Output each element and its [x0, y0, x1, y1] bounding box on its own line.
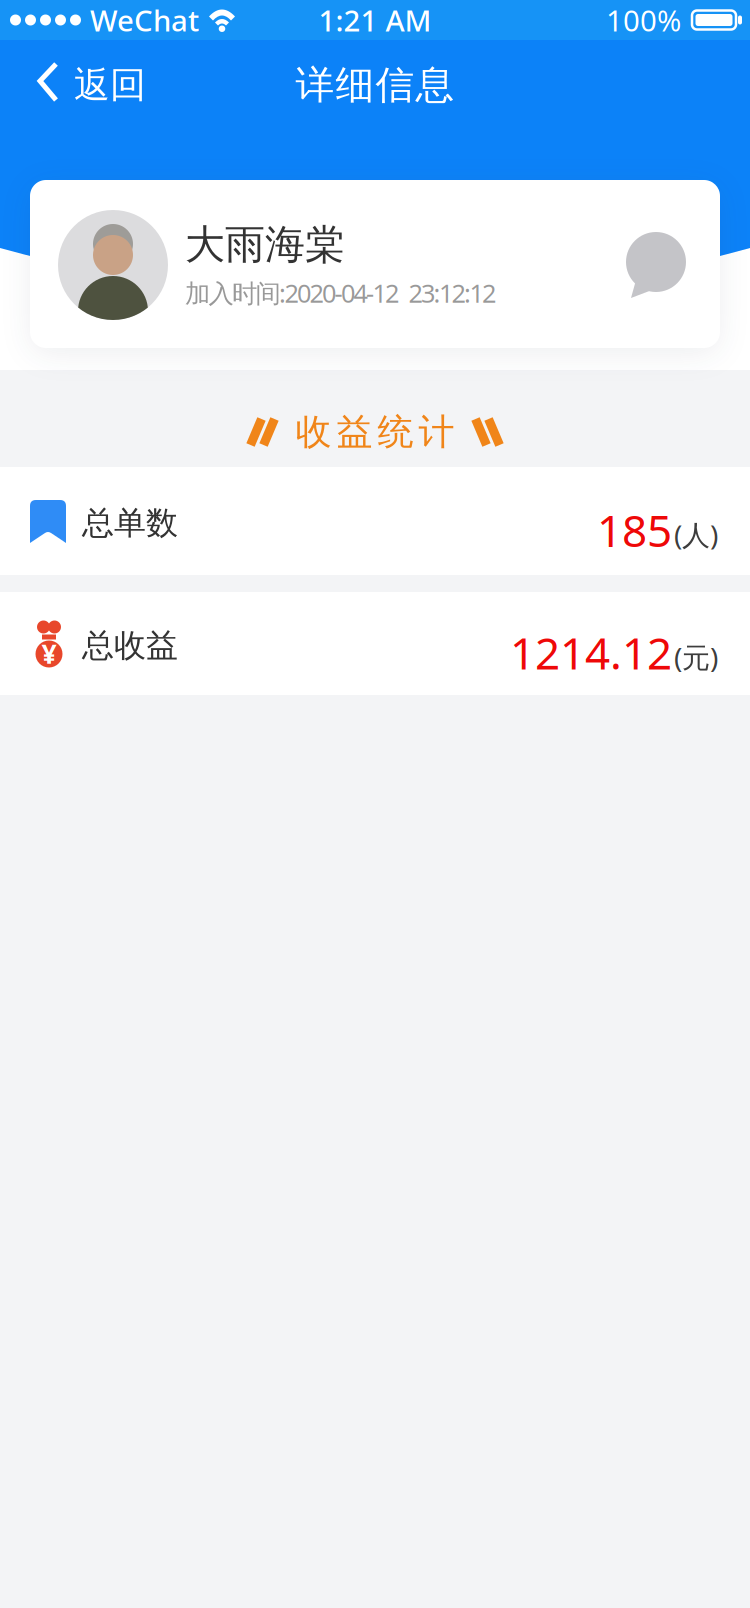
staticText: 统	[377, 410, 413, 454]
staticText: 大雨海棠	[185, 220, 345, 269]
staticText: 加入时间:2020-04-12 23:12:12	[185, 276, 496, 310]
staticText: (元)	[674, 638, 718, 676]
staticText: 益	[336, 410, 372, 454]
staticText: 1:21 AM	[318, 0, 431, 39]
staticText: 收	[295, 410, 331, 454]
staticText: 1214.12	[510, 623, 672, 682]
staticText: 计	[418, 410, 454, 454]
staticText: (人)	[674, 516, 718, 553]
staticText: 详细信息	[295, 61, 454, 109]
staticText: ¥	[41, 636, 56, 671]
staticText: WeChat	[90, 0, 199, 39]
button[interactable]	[626, 232, 690, 300]
staticText: 185	[597, 501, 672, 559]
staticText: 总单数	[82, 503, 178, 543]
staticText: 100%	[606, 0, 681, 39]
staticText: 返回	[74, 63, 146, 107]
button[interactable]: 返回	[34, 55, 146, 115]
staticText: 总收益	[82, 626, 178, 665]
